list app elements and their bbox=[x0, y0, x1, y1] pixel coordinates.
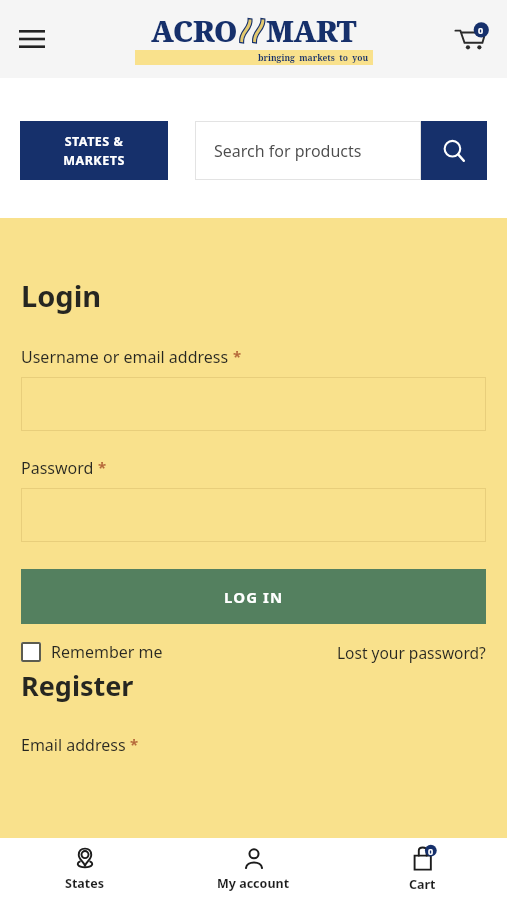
button[interactable]: Cart bbox=[449, 17, 493, 61]
staticText: Register bbox=[21, 667, 134, 704]
button[interactable]: Menu bbox=[12, 19, 52, 59]
button[interactable]: States bbox=[0, 838, 169, 900]
staticText: 0 bbox=[428, 845, 434, 857]
button[interactable] bbox=[21, 488, 486, 542]
staticText: * bbox=[126, 734, 139, 754]
button[interactable]: Search bbox=[421, 121, 487, 180]
button[interactable]: My account bbox=[169, 838, 338, 900]
button[interactable]: Remember me bbox=[21, 641, 163, 663]
staticText: My account bbox=[217, 875, 290, 892]
staticText: * bbox=[94, 457, 107, 477]
button[interactable] bbox=[21, 377, 486, 431]
staticText: Cart bbox=[409, 876, 436, 893]
staticText: Search for products bbox=[214, 140, 362, 162]
staticText: bringing markets to you bbox=[258, 52, 369, 64]
staticText: STATES & MARKETS bbox=[63, 133, 125, 169]
button[interactable]: 0 bbox=[338, 838, 507, 900]
staticText: Email address bbox=[21, 734, 126, 756]
staticText: Remember me bbox=[51, 641, 163, 663]
staticText: 0 bbox=[478, 24, 484, 36]
button[interactable]: Lost your password? bbox=[337, 642, 486, 663]
staticText: Username or email address bbox=[21, 346, 229, 368]
staticText: Login bbox=[21, 276, 102, 315]
staticText: LOG IN bbox=[224, 587, 284, 607]
button[interactable]: LOG IN bbox=[21, 569, 486, 624]
button[interactable]: Search for products bbox=[195, 121, 421, 180]
staticText: MART bbox=[266, 11, 357, 50]
staticText: * bbox=[229, 346, 242, 366]
staticText: ACRO bbox=[151, 11, 238, 50]
staticText: Password bbox=[21, 457, 94, 479]
staticText: States bbox=[65, 875, 104, 892]
button[interactable]: STATES & MARKETS bbox=[20, 121, 168, 180]
